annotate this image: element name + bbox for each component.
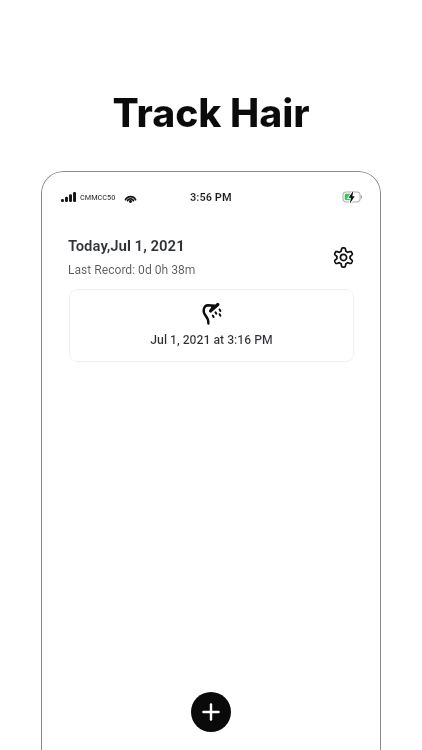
button[interactable]: Settings — [325, 239, 361, 275]
staticText: 3:56 PM — [190, 191, 232, 204]
button[interactable]: Jul 1, 2021 at 3:16 PM — [69, 289, 354, 362]
staticText: Last Record: 0d 0h 38m — [68, 263, 196, 277]
staticText: Today,Jul 1, 2021 — [68, 237, 185, 254]
staticText: Jul 1, 2021 at 3:16 PM — [69, 333, 354, 347]
staticText: CMMCC50 — [80, 193, 116, 202]
staticText: Track Hair — [112, 89, 310, 136]
button[interactable]: Add new record — [191, 692, 231, 732]
